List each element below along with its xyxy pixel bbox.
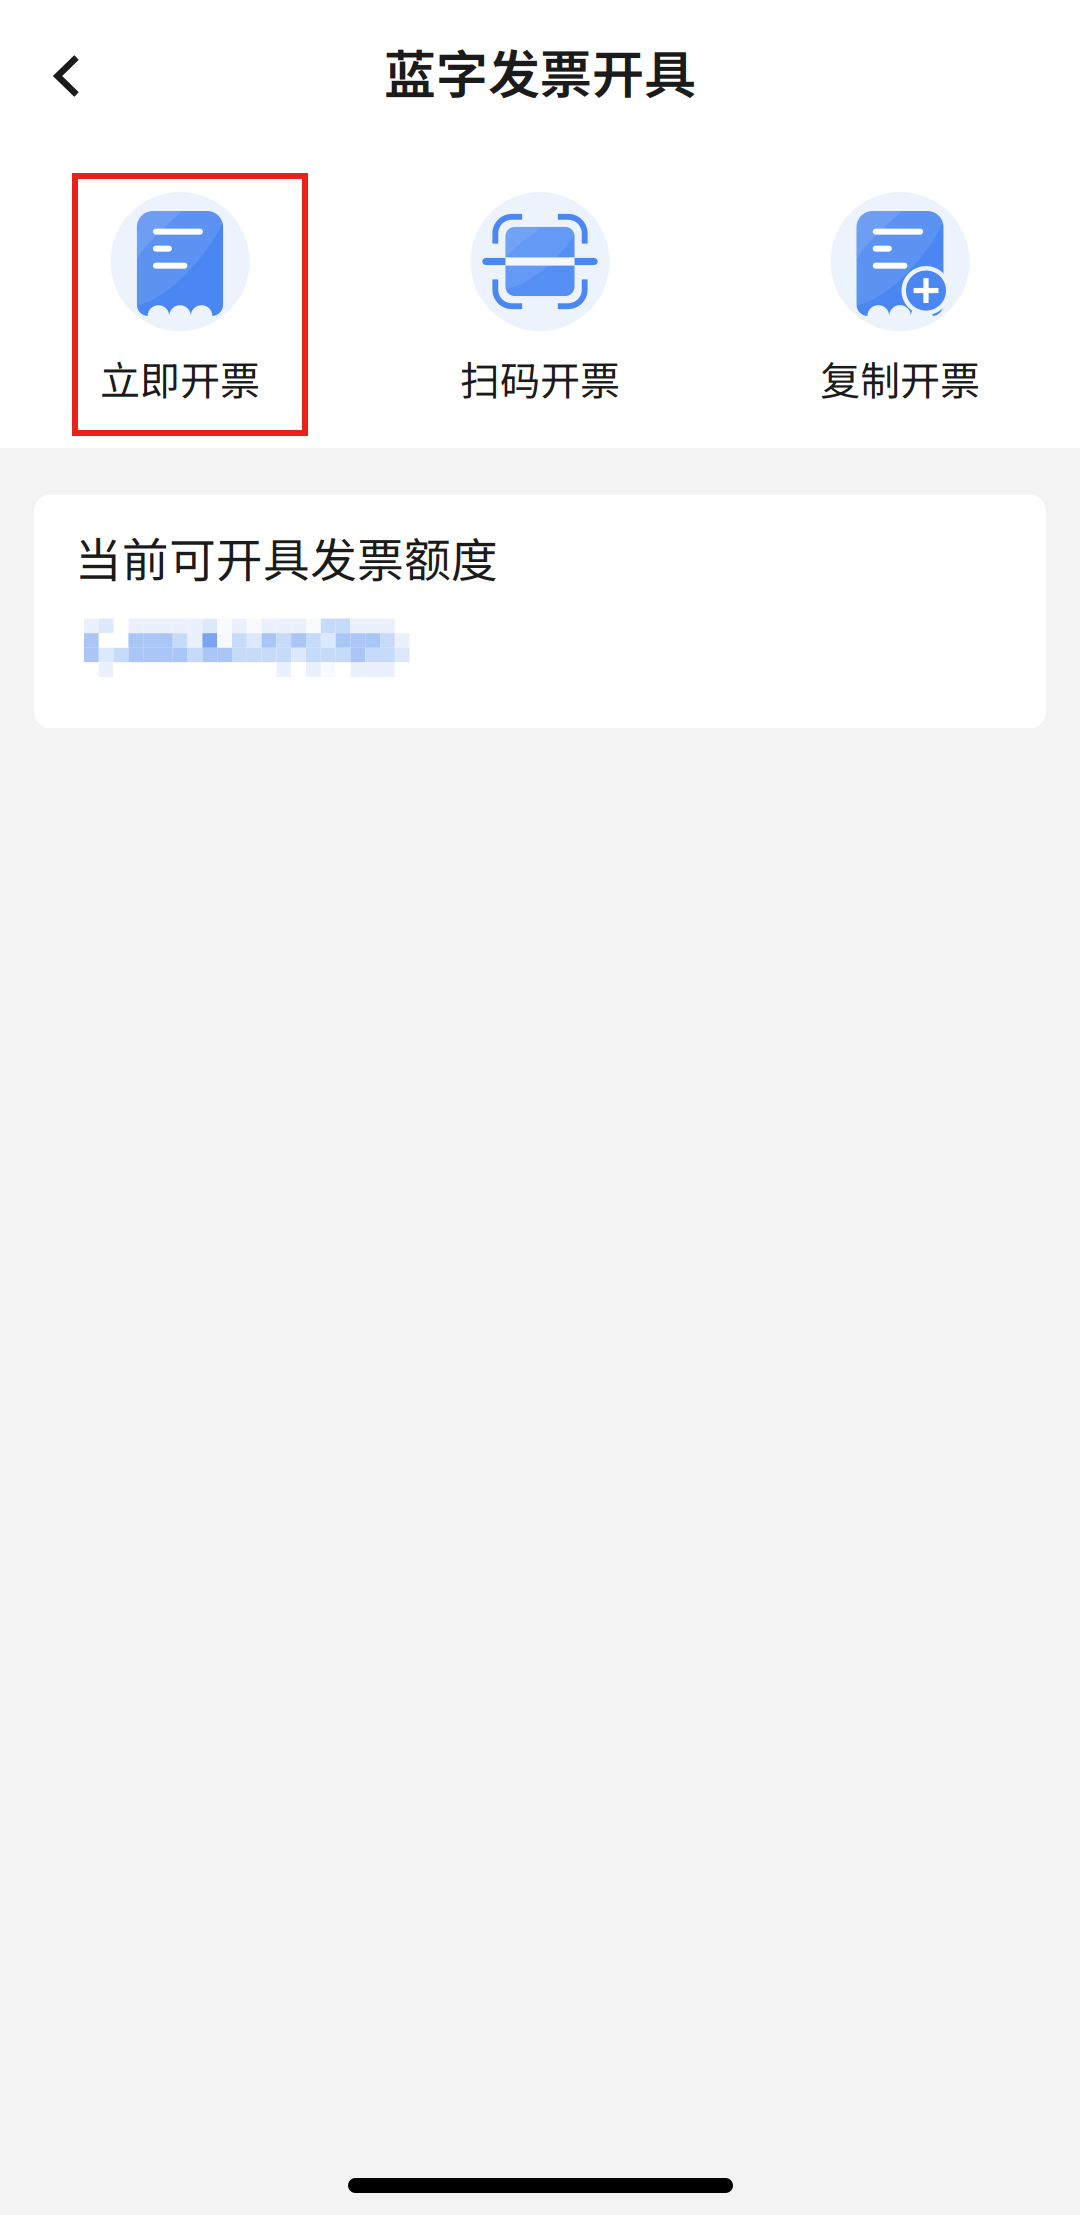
button[interactable]: 立即开票 (0, 192, 360, 449)
staticText: 立即开票 (100, 349, 260, 407)
staticText: 蓝字发票开具 (384, 33, 696, 109)
staticText: 扫码开票 (460, 349, 620, 407)
button[interactable]: 返回 (19, 21, 115, 131)
button[interactable]: 扫码开票 (360, 192, 720, 449)
button[interactable]: 复制开票 (720, 192, 1080, 449)
staticText: 复制开票 (820, 349, 980, 407)
staticText: 当前可开具发票额度 (75, 523, 498, 591)
